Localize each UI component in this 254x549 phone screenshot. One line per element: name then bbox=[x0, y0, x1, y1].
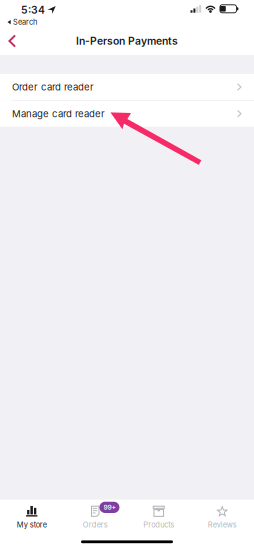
button[interactable]: Manage card reader bbox=[0, 101, 254, 127]
button[interactable]: Order card reader bbox=[0, 74, 254, 100]
button[interactable]: Products bbox=[127, 499, 190, 537]
button[interactable]: Reviews bbox=[190, 499, 254, 537]
staticText: My store bbox=[17, 520, 47, 529]
staticText: Search bbox=[13, 18, 37, 27]
staticText: In-Person Payments bbox=[76, 35, 178, 47]
staticText: 99+ bbox=[103, 503, 115, 511]
staticText: Manage card reader bbox=[12, 108, 105, 119]
button[interactable]: Back bbox=[0, 28, 27, 53]
button[interactable]: My store bbox=[0, 499, 63, 537]
staticText: Orders bbox=[83, 520, 108, 529]
button[interactable]: 99+ bbox=[63, 499, 127, 537]
staticText: Order card reader bbox=[12, 81, 94, 93]
staticText: 5:34 bbox=[21, 4, 45, 16]
staticText: Products bbox=[143, 520, 174, 529]
staticText: Reviews bbox=[208, 520, 237, 529]
